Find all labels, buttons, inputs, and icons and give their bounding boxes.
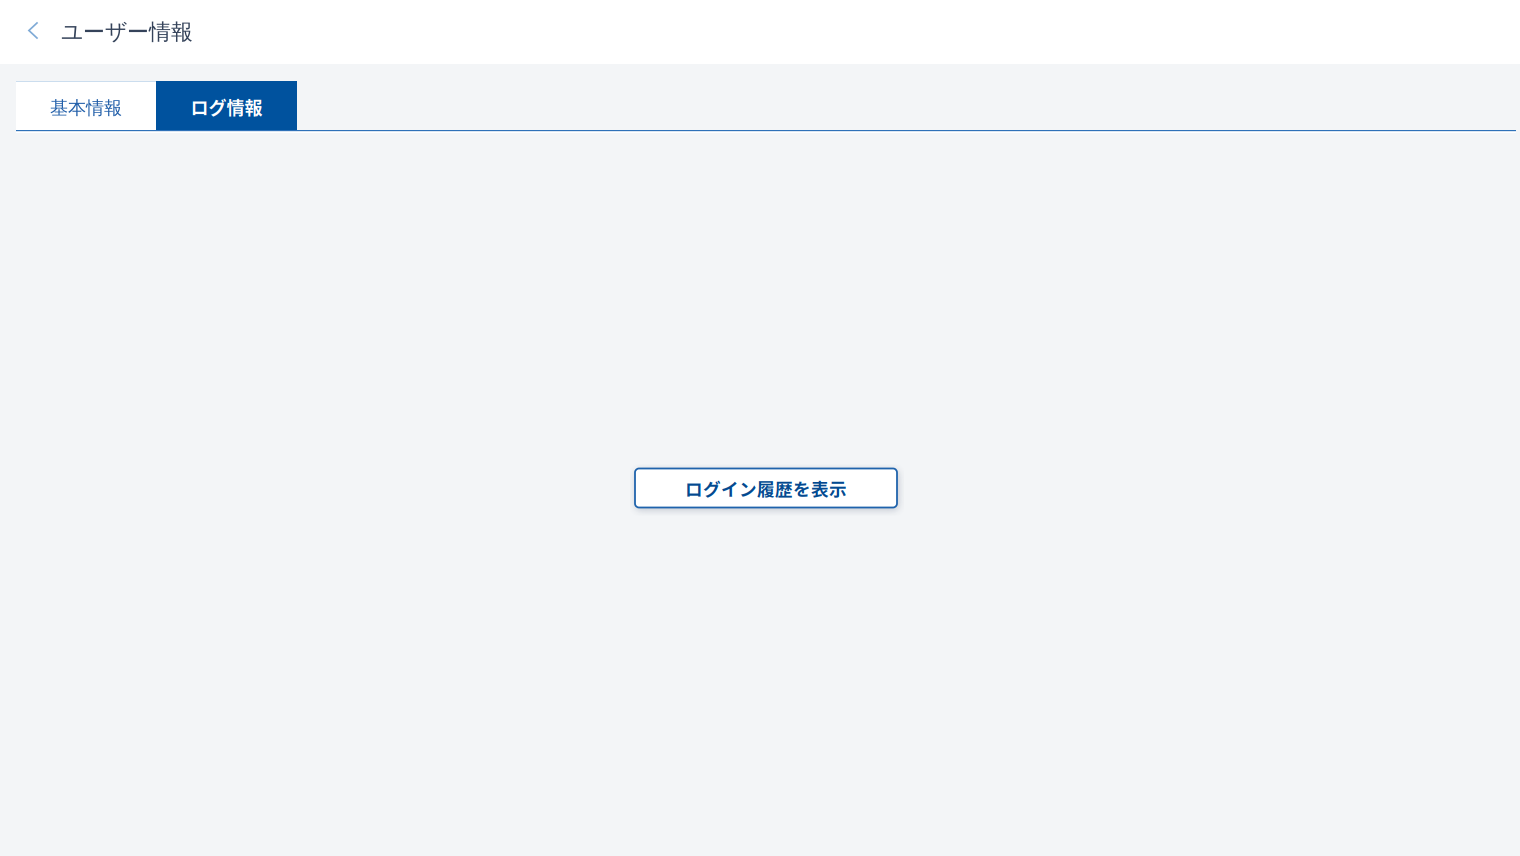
staticText: ログ情報	[190, 94, 262, 120]
button[interactable]: ログ情報	[156, 81, 297, 130]
button[interactable]: Back	[0, 0, 45, 64]
staticText: 基本情報	[50, 97, 122, 119]
staticText: ログイン履歴を表示	[685, 475, 847, 501]
button[interactable]: 基本情報	[16, 81, 156, 130]
staticText: ユーザー情報	[61, 18, 193, 46]
button[interactable]: ログイン履歴を表示	[635, 468, 897, 507]
